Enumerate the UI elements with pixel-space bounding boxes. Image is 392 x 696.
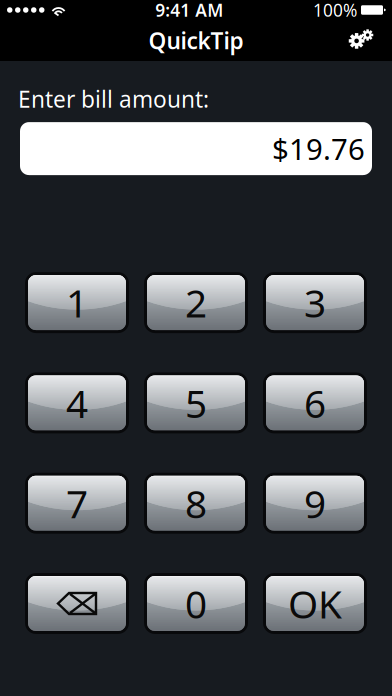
staticText: 6 (304, 377, 326, 428)
staticText: 8 (185, 477, 207, 529)
button[interactable]: 9 (263, 473, 367, 534)
staticText: 3 (304, 277, 326, 328)
button[interactable]: 1 (25, 272, 129, 333)
staticText: QuickTip (148, 25, 243, 55)
staticText: 1 (66, 277, 88, 328)
staticText: 2 (185, 277, 207, 328)
button[interactable]: Delete (25, 573, 129, 634)
button[interactable]: OK (263, 573, 367, 634)
staticText: 0 (185, 578, 207, 629)
staticText: 5 (185, 377, 207, 428)
staticText: 9:41 AM (155, 0, 223, 21)
button[interactable]: Settings (340, 20, 382, 61)
button[interactable]: 8 (144, 473, 248, 534)
staticText: 100% (313, 0, 357, 21)
button[interactable]: 0 (144, 573, 248, 634)
staticText: $19.76 (272, 129, 365, 168)
button[interactable]: 6 (263, 372, 367, 433)
staticText: OK (288, 578, 342, 629)
staticText: Enter bill amount: (18, 84, 209, 114)
staticText: 9 (304, 477, 326, 529)
button[interactable]: 7 (25, 473, 129, 534)
staticText: 4 (66, 377, 88, 428)
staticText: 7 (66, 477, 88, 529)
button[interactable]: 2 (144, 272, 248, 333)
button[interactable]: 4 (25, 372, 129, 433)
button[interactable]: 5 (144, 372, 248, 433)
button[interactable]: 3 (263, 272, 367, 333)
